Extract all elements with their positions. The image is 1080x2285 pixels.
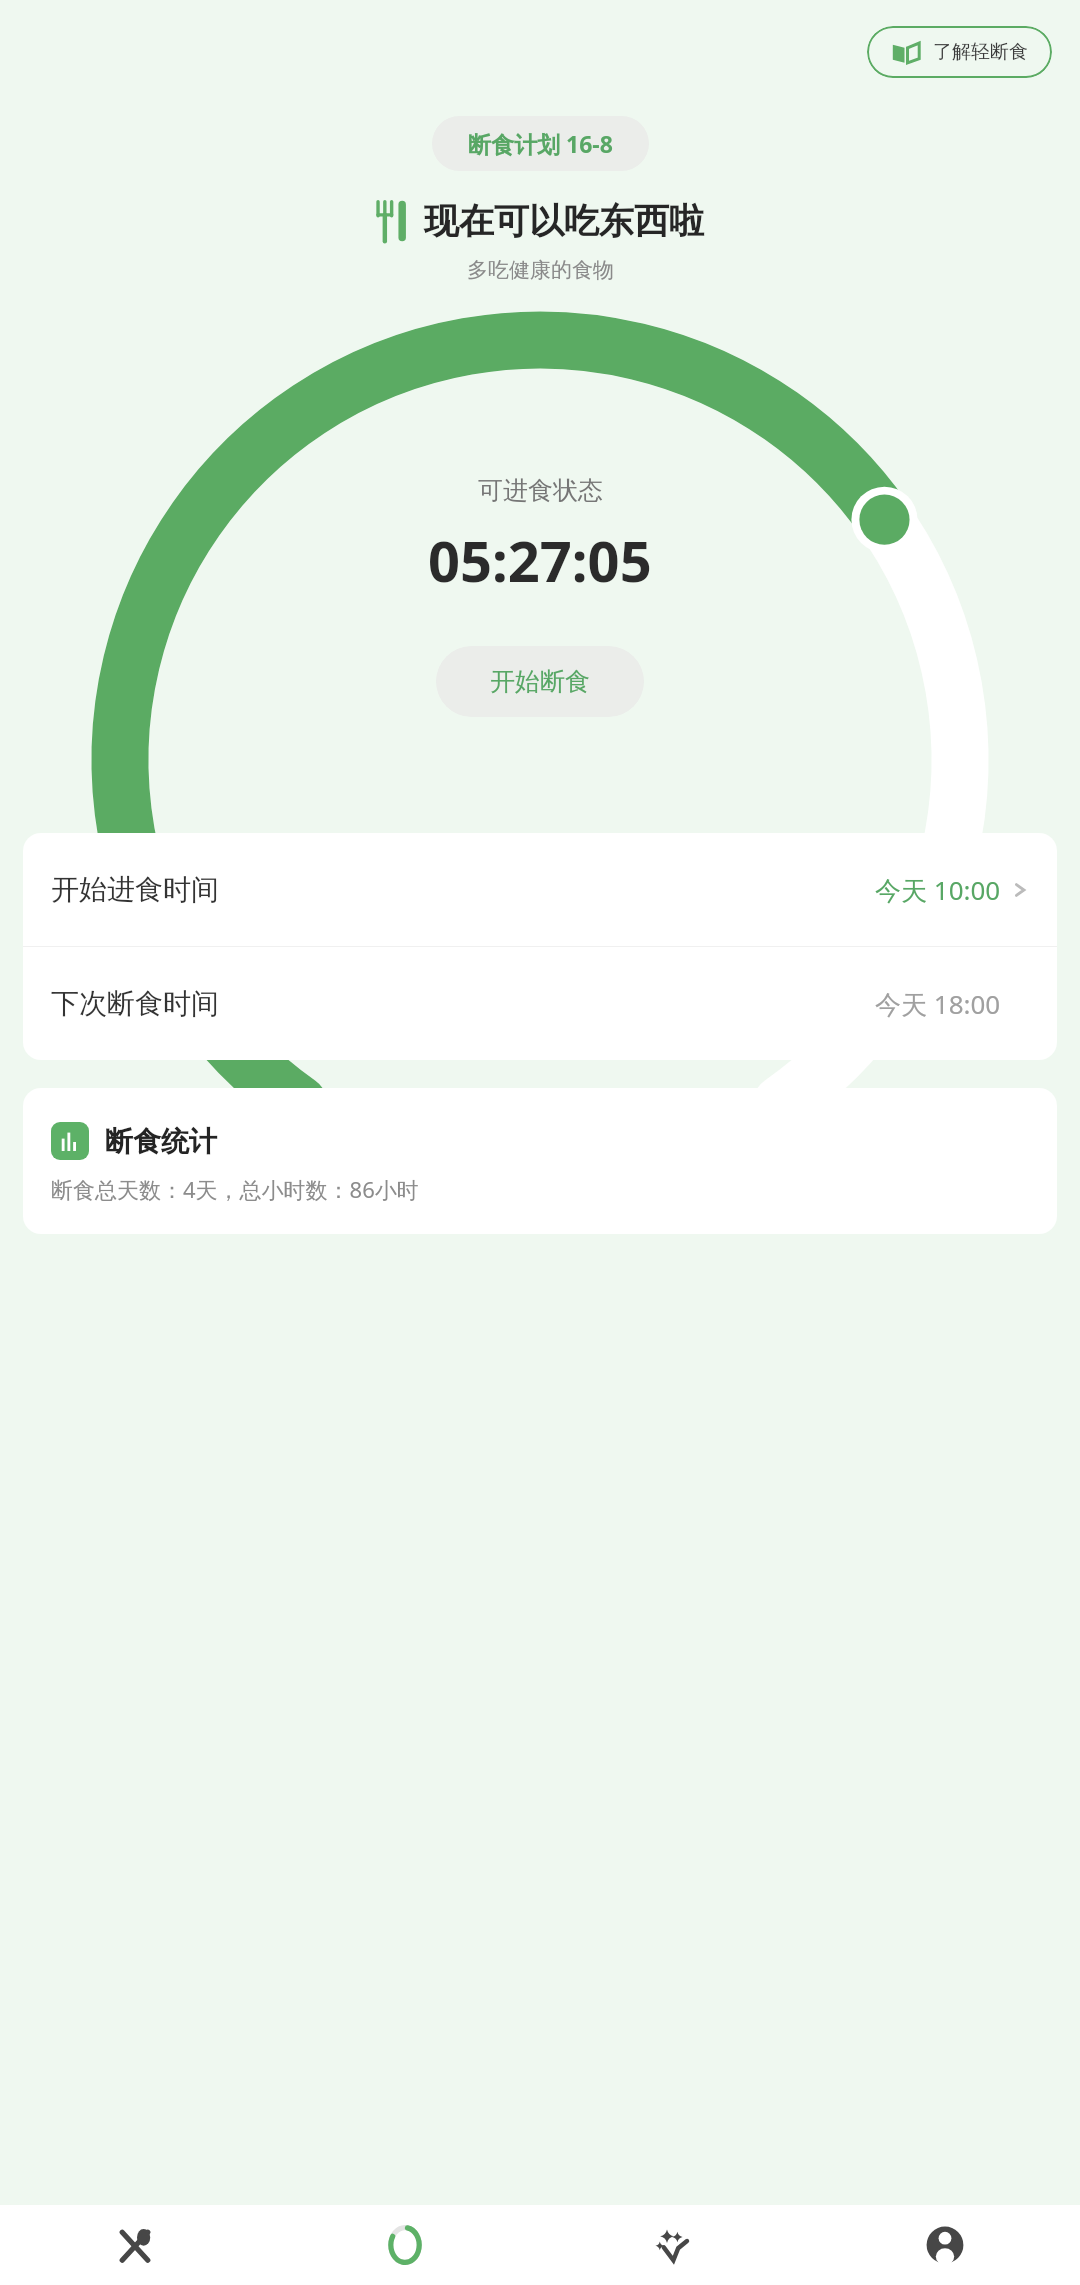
button[interactable]: 断食统计 — [23, 1088, 1057, 1234]
button[interactable]: Meals — [0, 2205, 270, 2285]
staticText: 05:27:05 — [428, 522, 652, 598]
staticText: 开始断食 — [490, 666, 590, 697]
button[interactable]: 开始断食 — [436, 646, 644, 717]
staticText: 今天 18:00 — [875, 986, 1001, 1022]
staticText: 今天 10:00 — [875, 872, 1001, 908]
staticText: 断食计划 16-8 — [468, 128, 613, 159]
staticText: 断食统计 — [105, 1124, 217, 1159]
button[interactable]: Profile — [810, 2205, 1080, 2285]
staticText: 多吃健康的食物 — [467, 257, 614, 283]
button[interactable]: 了解轻断食 — [867, 26, 1052, 78]
button[interactable]: 下次断食时间 — [23, 947, 1057, 1060]
staticText: 断食总天数：4天，总小时数：86小时 — [51, 1174, 419, 1204]
button[interactable]: Insights — [540, 2205, 810, 2285]
staticText: 可进食状态 — [478, 475, 603, 506]
button[interactable]: 断食计划 16-8 — [432, 116, 649, 171]
button[interactable]: Fasting — [270, 2205, 540, 2285]
staticText: 开始进食时间 — [51, 872, 219, 907]
staticText: 现在可以吃东西啦 — [424, 199, 704, 243]
staticText: 了解轻断食 — [933, 40, 1028, 64]
button[interactable]: 开始进食时间 — [23, 833, 1057, 946]
staticText: 下次断食时间 — [51, 986, 219, 1021]
